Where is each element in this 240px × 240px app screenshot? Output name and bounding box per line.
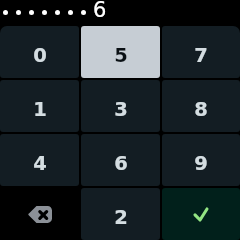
staticText: 6 (114, 152, 128, 175)
button[interactable]: 6 (81, 134, 160, 186)
button[interactable]: Confirm (162, 188, 240, 240)
button[interactable]: 7 (162, 26, 240, 78)
button[interactable]: 1 (0, 80, 79, 132)
staticText: 6 (93, 0, 107, 22)
button[interactable]: Backspace (0, 188, 79, 240)
button[interactable]: 8 (162, 80, 240, 132)
button[interactable]: 3 (81, 80, 160, 132)
staticText: 2 (114, 206, 128, 229)
staticText: 8 (194, 98, 208, 121)
button[interactable]: 9 (162, 134, 240, 186)
staticText: 1 (33, 98, 47, 121)
staticText: 7 (194, 44, 208, 67)
button[interactable]: 2 (81, 188, 160, 240)
staticText: 5 (114, 44, 128, 67)
staticText: 9 (194, 152, 208, 175)
staticText: 4 (33, 152, 47, 175)
button[interactable]: 0 (0, 26, 79, 78)
staticText: 3 (114, 98, 128, 121)
button[interactable]: 5 (81, 26, 160, 78)
button[interactable]: 4 (0, 134, 79, 186)
staticText: 0 (33, 44, 47, 67)
